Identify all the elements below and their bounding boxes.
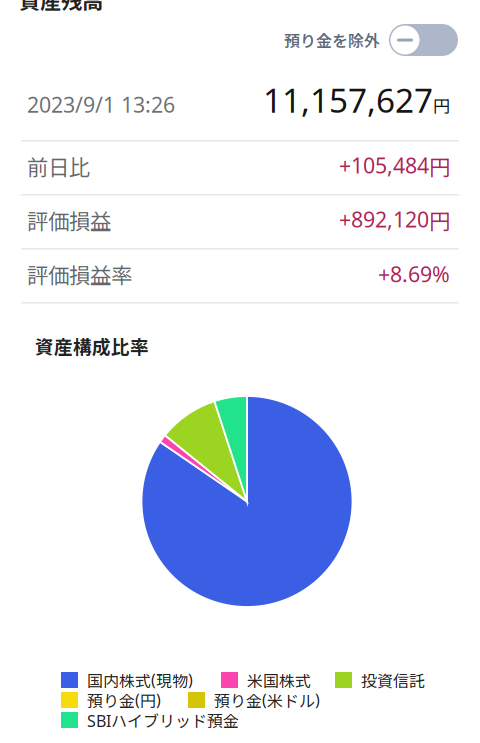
staticText: 預り金(円) [87,688,161,712]
staticText: 資産残高 [19,0,103,15]
staticText: SBIハイブリッド預金 [87,708,239,732]
staticText: 円 [433,92,450,118]
staticText: +105,484円 [339,150,450,181]
staticText: +8.69% [378,259,450,288]
button[interactable]: 前日比 [0,141,480,194]
button[interactable]: 評価損益 [0,195,480,248]
staticText: 資産構成比率 [35,332,149,359]
staticText: 2023/9/1 13:26 [27,90,175,119]
button[interactable]: 預り金を除外 [284,24,458,56]
staticText: 11,157,627 [263,77,433,122]
staticText: 前日比 [27,150,90,181]
staticText: 国内株式(現物) [87,668,193,692]
staticText: 評価損益 [27,204,111,235]
staticText: 預り金を除外 [284,28,380,52]
staticText: 米国株式 [247,668,311,692]
staticText: +892,120円 [339,204,450,235]
staticText: 評価損益率 [27,258,132,289]
staticText: 預り金(米ドル) [214,688,320,712]
button[interactable]: 評価損益率 [0,249,480,302]
staticText: 投資信託 [361,668,425,692]
